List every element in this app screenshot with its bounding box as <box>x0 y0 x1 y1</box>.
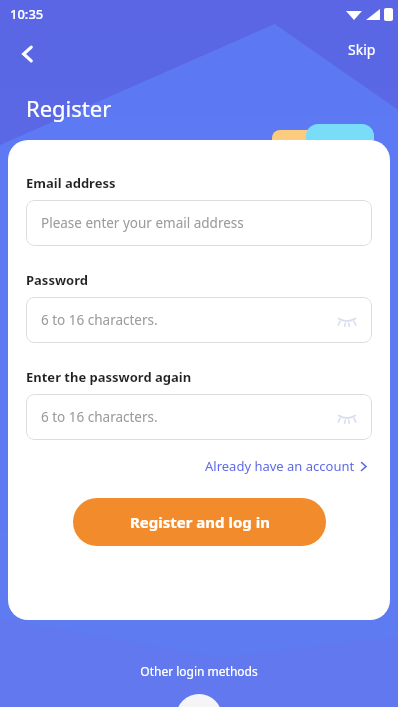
staticText: Password <box>26 271 88 289</box>
button[interactable]: Other login <box>176 694 222 707</box>
button[interactable]: 6 to 16 characters. <box>26 394 372 440</box>
staticText: Register <box>26 93 112 123</box>
staticText: Skip <box>348 40 376 59</box>
staticText: 10:35 <box>10 5 44 23</box>
staticText: Enter the password again <box>26 368 192 386</box>
button[interactable]: Register and log in <box>73 498 326 546</box>
button[interactable]: Back <box>8 34 48 74</box>
button[interactable]: Skip <box>340 36 384 63</box>
button[interactable]: 6 to 16 characters. <box>26 297 372 343</box>
other: Toggle password visibility <box>337 411 357 423</box>
button[interactable]: Already have an account <box>201 454 372 478</box>
staticText: Other login methods <box>140 663 258 679</box>
staticText: Email address <box>26 174 116 192</box>
staticText: 6 to 16 characters. <box>41 408 158 426</box>
button[interactable]: Please enter your email address <box>26 200 372 246</box>
other: Toggle password visibility <box>337 314 357 326</box>
staticText: 6 to 16 characters. <box>41 311 158 329</box>
staticText: Please enter your email address <box>41 214 244 232</box>
staticText: Already have an account <box>205 457 355 475</box>
staticText: Register and log in <box>130 512 270 532</box>
